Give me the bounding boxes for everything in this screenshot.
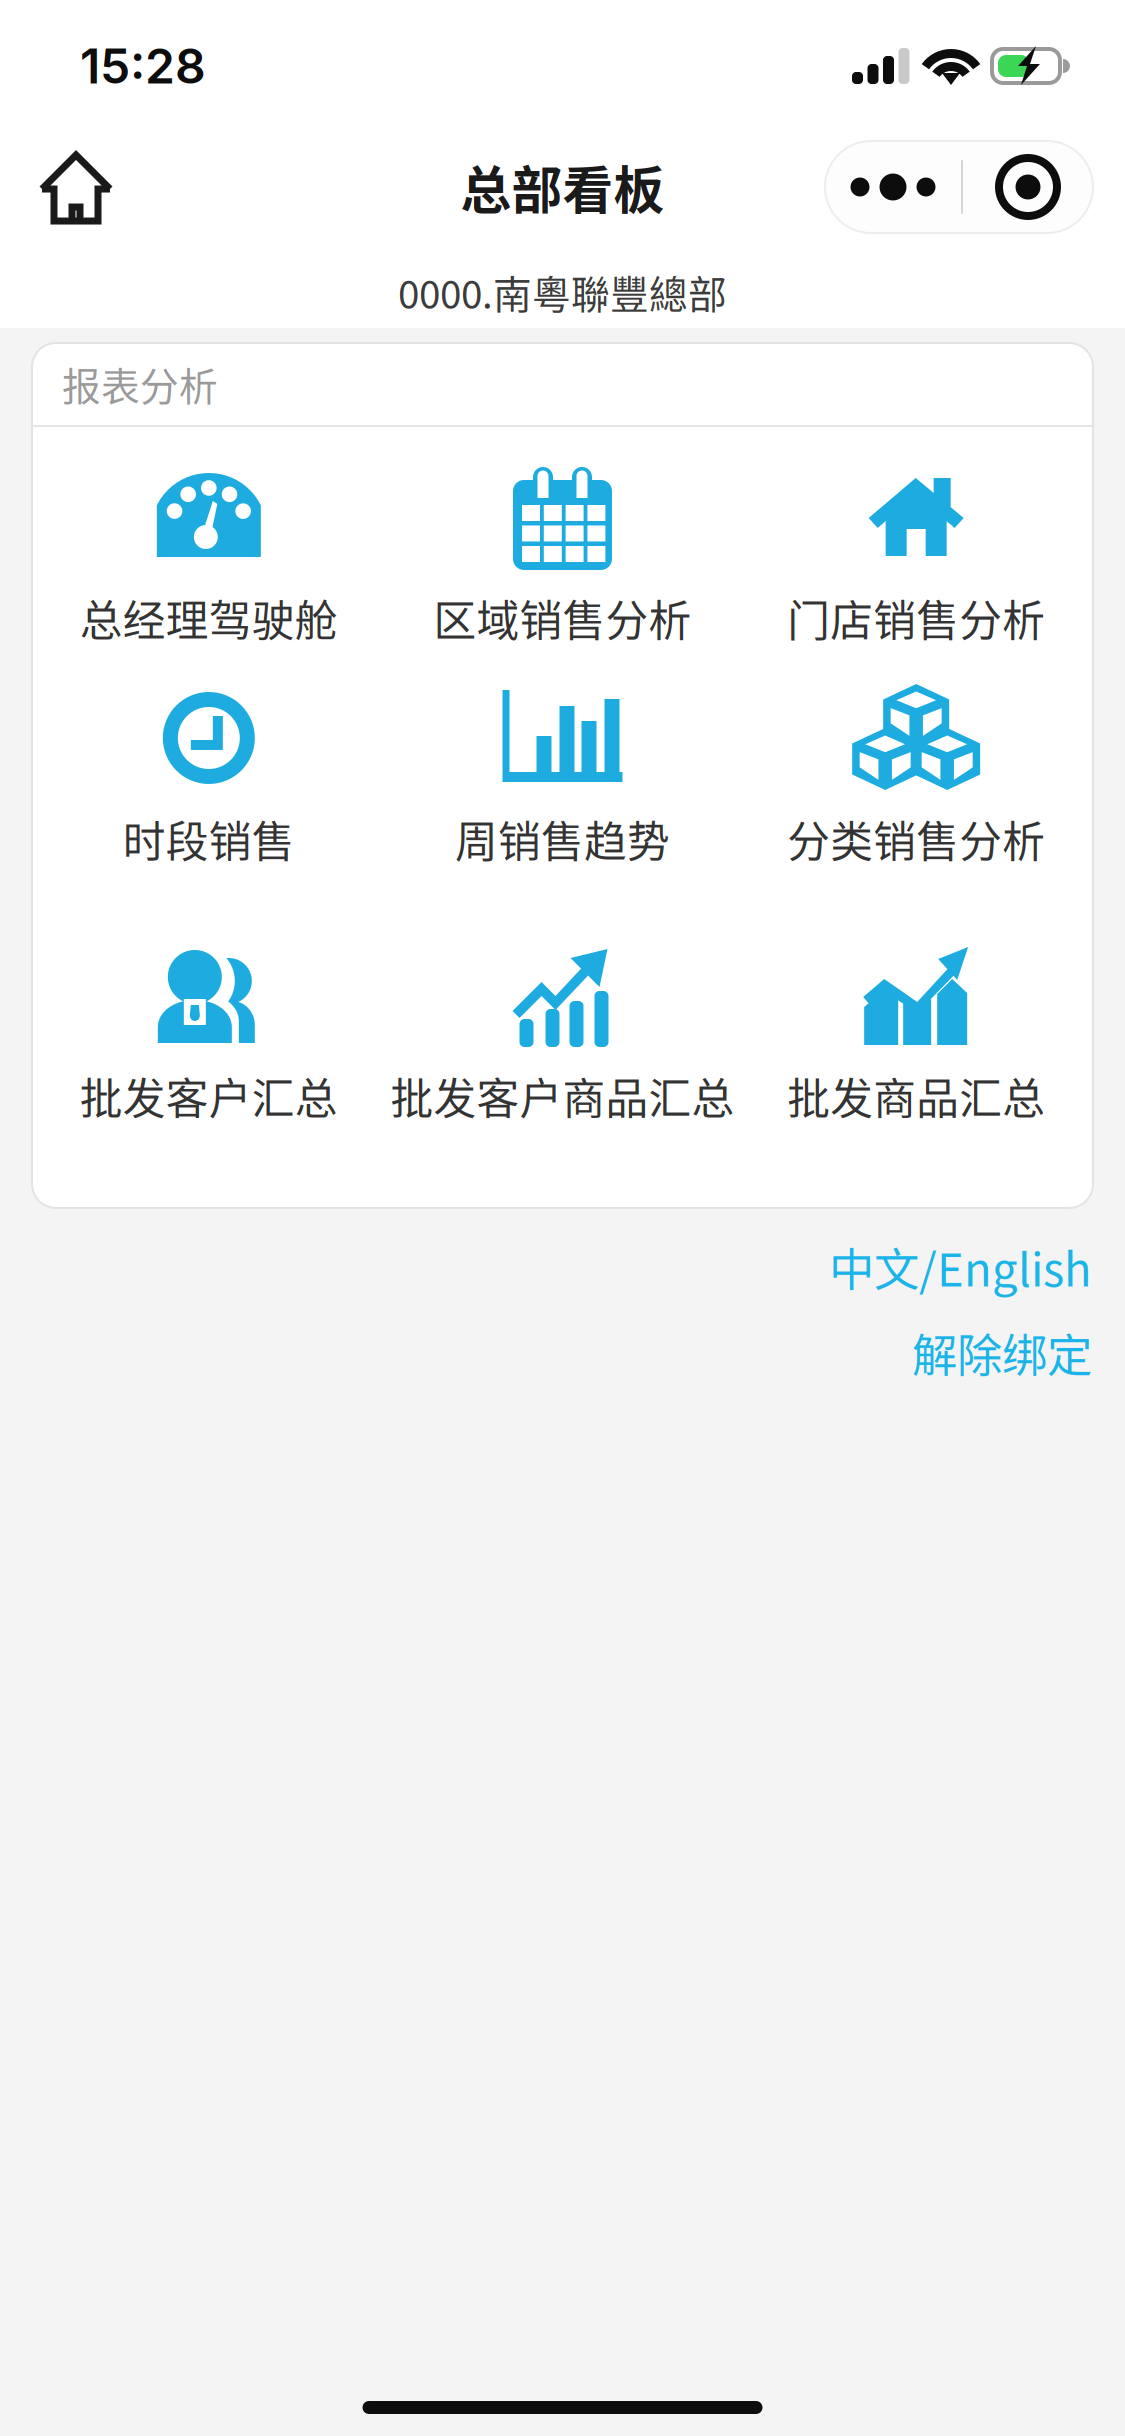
staticText: 批发商品汇总 xyxy=(787,1065,1045,1127)
button[interactable]: 总经理驾驶舱 xyxy=(32,465,386,686)
button[interactable]: 批发客户商品汇总 xyxy=(386,943,739,1175)
button[interactable]: 区域销售分析 xyxy=(386,465,739,686)
button[interactable]: 时段销售 xyxy=(32,686,386,943)
button[interactable]: 分类销售分析 xyxy=(739,686,1093,943)
button[interactable]: Close xyxy=(963,141,1093,233)
button[interactable]: 批发商品汇总 xyxy=(739,943,1093,1175)
button[interactable]: 周销售趋势 xyxy=(386,686,739,943)
staticText: 门店销售分析 xyxy=(787,587,1045,649)
staticText: 中文/English xyxy=(829,1234,1092,1300)
staticText: 周销售趋势 xyxy=(455,808,670,870)
staticText: 时段销售 xyxy=(123,808,295,870)
staticText: 分类销售分析 xyxy=(787,808,1045,870)
staticText: 15:28 xyxy=(80,37,206,95)
staticText: 批发客户商品汇总 xyxy=(390,1065,734,1127)
staticText: 解除绑定 xyxy=(912,1320,1092,1385)
button[interactable]: Home xyxy=(22,137,130,237)
staticText: 0000.南粵聯豐總部 xyxy=(398,264,727,320)
button[interactable]: More xyxy=(825,141,961,233)
button[interactable]: 门店销售分析 xyxy=(739,465,1093,686)
staticText: 报表分析 xyxy=(62,356,218,412)
button[interactable]: 中文/English xyxy=(829,1224,1092,1310)
button[interactable]: 解除绑定 xyxy=(912,1310,1092,1395)
staticText: 批发客户汇总 xyxy=(80,1065,338,1127)
button[interactable]: 批发客户汇总 xyxy=(32,943,386,1175)
staticText: 总经理驾驶舱 xyxy=(80,587,338,649)
staticText: 区域销售分析 xyxy=(433,587,691,649)
staticText: 总部看板 xyxy=(460,150,664,224)
